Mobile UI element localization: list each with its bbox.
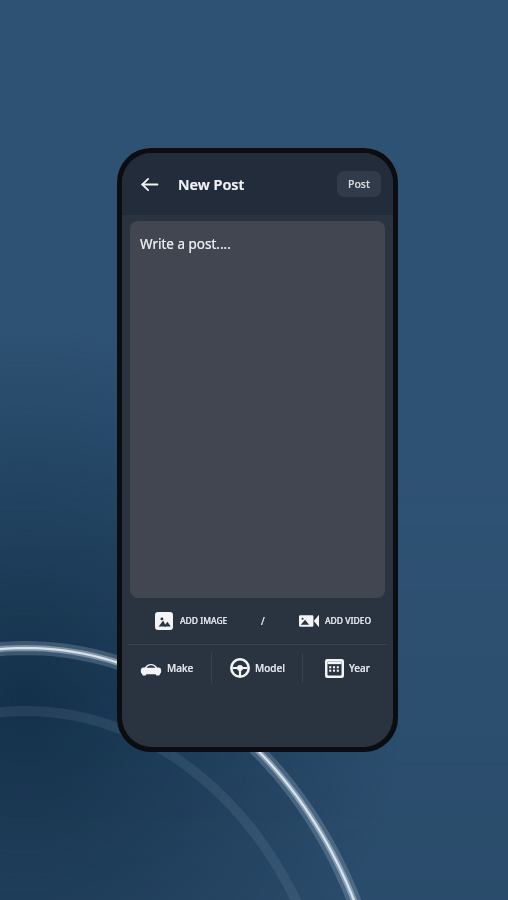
button[interactable]: Back [134, 169, 164, 199]
staticText: Make [167, 661, 194, 675]
staticText: ADD VIDEO [325, 615, 372, 627]
button[interactable]: Year [303, 645, 393, 691]
staticText: ADD IMAGE [180, 615, 228, 627]
button[interactable]: ADD VIDEO [296, 608, 375, 634]
staticText: Year [349, 661, 371, 675]
staticText: / [261, 614, 265, 628]
button[interactable]: ADD IMAGE [152, 609, 231, 633]
staticText: Post [348, 177, 370, 191]
staticText: Write a post.... [140, 235, 231, 253]
staticText: Model [255, 661, 285, 675]
button[interactable]: Make [122, 645, 211, 691]
button[interactable]: Model [212, 645, 302, 691]
staticText: New Post [178, 174, 245, 194]
button[interactable]: Post [337, 171, 381, 197]
button[interactable]: Write a post.... [130, 221, 385, 598]
